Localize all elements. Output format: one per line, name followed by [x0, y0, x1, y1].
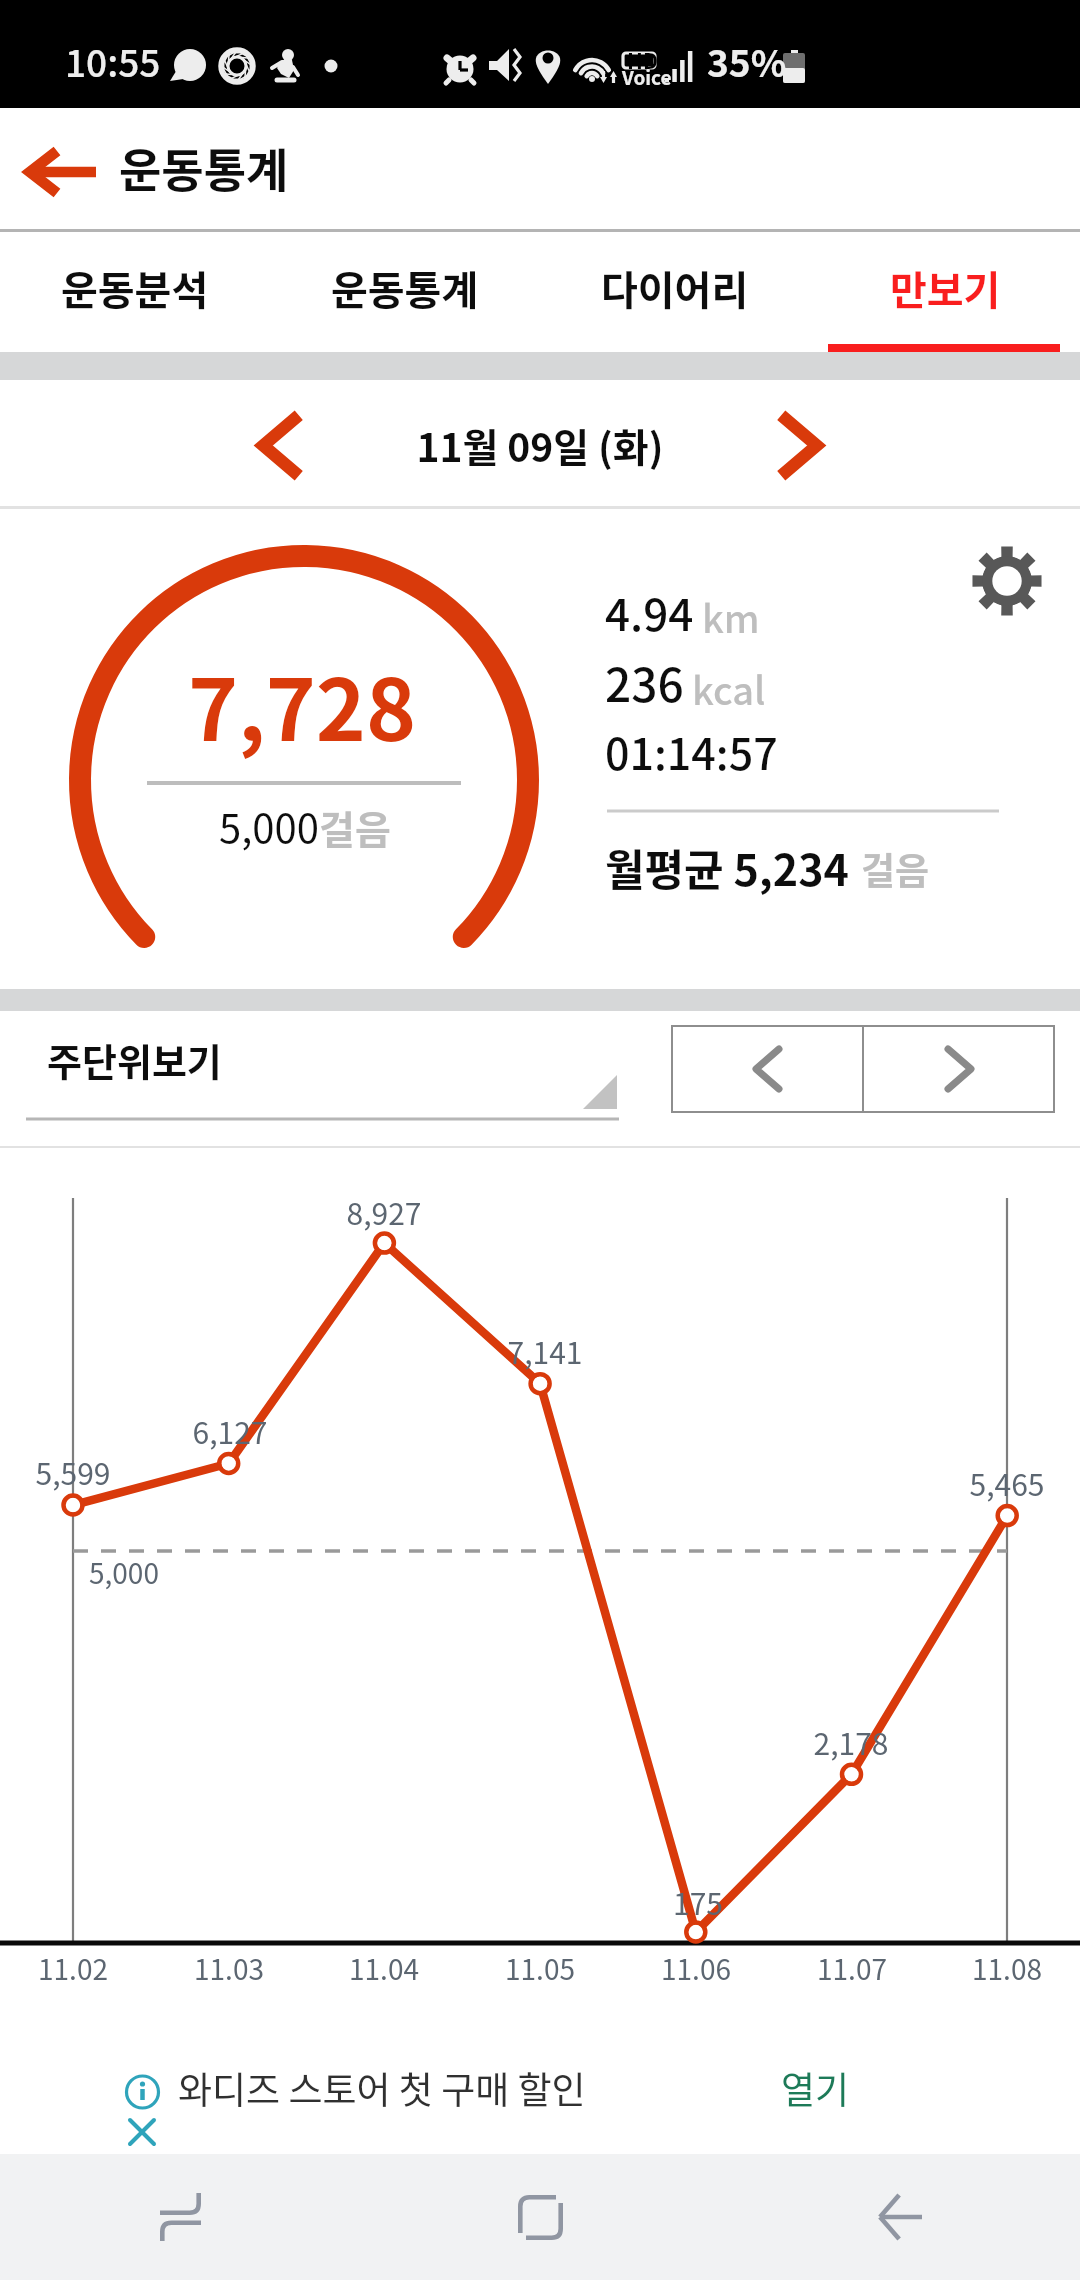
staticText: 11.03	[79, 1948, 379, 1989]
staticText: 5,599	[0, 1450, 223, 1493]
staticText: 10:55	[65, 34, 161, 88]
button[interactable]: Previous day	[243, 396, 319, 494]
staticText: 11.04	[234, 1948, 534, 1989]
button[interactable]: Home	[360, 2154, 720, 2280]
staticText: 11.02	[0, 1948, 223, 1989]
staticText: 11.08	[857, 1948, 1080, 1989]
staticText: HD	[627, 45, 658, 75]
button[interactable]: 만보기	[810, 232, 1080, 352]
staticText: 4.94	[605, 580, 694, 644]
button[interactable]: Next week	[864, 1026, 1054, 1112]
staticText: 와디즈 스토어 첫 구매 할인	[178, 2061, 586, 2115]
staticText: 11.06	[546, 1948, 846, 1989]
button[interactable]: Settings	[963, 537, 1051, 625]
button[interactable]: Recent apps	[0, 2154, 360, 2280]
staticText: 35%	[707, 34, 787, 88]
staticText: km	[702, 589, 760, 644]
staticText: 5,000	[219, 797, 319, 855]
staticText: 다이어리	[601, 259, 749, 317]
staticText: 7,141	[395, 1329, 695, 1372]
staticText: 5,000	[89, 1552, 159, 1593]
button[interactable]: 운동분석	[0, 232, 270, 352]
staticText: 만보기	[890, 259, 1001, 317]
button[interactable]: Back	[10, 132, 110, 212]
staticText: Voice	[622, 63, 672, 91]
staticText: 월평균 5,234	[605, 836, 849, 898]
staticText: 운동분석	[61, 259, 209, 317]
button[interactable]: Back	[720, 2154, 1080, 2280]
staticText: 01:14:57	[605, 720, 778, 782]
staticText: 운동통계	[331, 259, 479, 317]
staticText: 236	[605, 649, 684, 716]
button[interactable]: 주단위보기	[26, 1021, 619, 1121]
staticText: 5,465	[857, 1461, 1080, 1504]
staticText: 걸음	[861, 842, 930, 896]
button[interactable]: Previous week	[672, 1026, 862, 1112]
staticText: kcal	[692, 661, 766, 716]
staticText: 175	[548, 1880, 848, 1923]
staticText: 7,728	[52, 642, 552, 765]
button[interactable]: Close ad	[118, 2108, 166, 2156]
staticText: 11월 09일 (화)	[240, 417, 840, 473]
staticText: 11.05	[390, 1948, 690, 1989]
staticText: 8,927	[234, 1190, 534, 1233]
staticText: 걸음	[319, 799, 391, 855]
staticText: 11.07	[702, 1948, 1002, 1989]
button[interactable]: 운동통계	[270, 232, 540, 352]
staticText: 2,178	[701, 1720, 1001, 1763]
staticText: 운동통계	[119, 134, 289, 201]
staticText: 6,127	[80, 1409, 380, 1452]
staticText: 주단위보기	[47, 1032, 222, 1087]
button[interactable]: 다이어리	[540, 232, 810, 352]
button[interactable]: Next day	[761, 396, 837, 494]
